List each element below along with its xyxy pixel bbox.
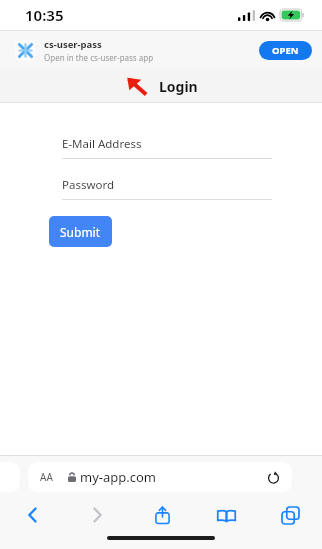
staticText: 10:35: [25, 5, 64, 25]
staticText: E-Mail Address: [62, 136, 142, 152]
staticText: OPEN: [272, 44, 299, 57]
button[interactable]: Tabs: [258, 498, 322, 532]
other: Reload: [267, 471, 280, 484]
staticText: Submit: [60, 224, 101, 240]
button[interactable]: Text size: [28, 462, 292, 492]
staticText: Open in the cs-user-pass app: [44, 52, 154, 63]
button[interactable]: Submit: [49, 216, 112, 247]
button[interactable]: Share: [130, 498, 194, 532]
staticText: Login: [159, 77, 198, 96]
staticText: Password: [62, 177, 115, 193]
staticText: cs-user-pass: [44, 38, 102, 51]
staticText: my-app.com: [80, 468, 156, 486]
button[interactable]: OPEN: [259, 41, 312, 60]
button[interactable]: Password: [62, 177, 272, 200]
button[interactable]: Bookmarks: [194, 498, 258, 532]
staticText: AA: [40, 470, 53, 484]
button[interactable]: Back: [0, 498, 65, 532]
button[interactable]: E-Mail Address: [62, 136, 272, 159]
button[interactable]: cs-user-pass: [0, 31, 322, 69]
button[interactable]: Forward: [65, 498, 130, 532]
